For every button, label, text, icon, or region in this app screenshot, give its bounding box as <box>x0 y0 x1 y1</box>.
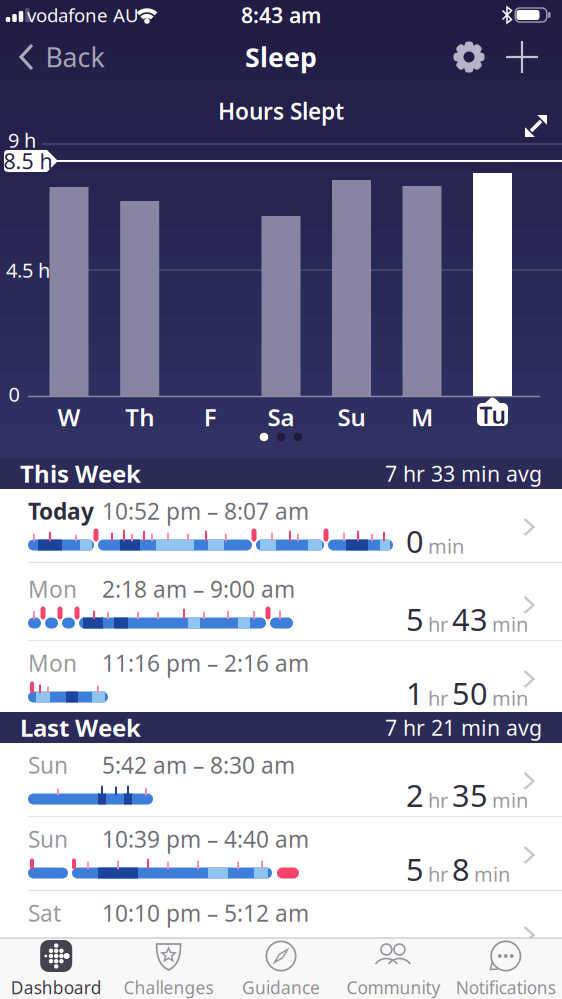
staticText: 8.5 h <box>3 147 52 175</box>
staticText: 8:43 am <box>241 1 321 29</box>
staticText: Challenges <box>124 976 214 999</box>
button[interactable]: Community <box>337 940 449 998</box>
staticText: Sleep <box>245 39 317 75</box>
staticText: 5:42 am – 8:30 am <box>102 750 295 780</box>
staticText: 4.5 h <box>6 257 50 283</box>
staticText: This Week <box>20 458 141 489</box>
staticText: min <box>428 533 464 559</box>
staticText: 10:39 pm – 4:40 am <box>102 824 309 854</box>
button[interactable]: Expand chart <box>519 109 553 143</box>
staticText: Mon <box>28 648 77 678</box>
staticText: Notifications <box>456 976 556 999</box>
staticText: Last Week <box>20 712 141 743</box>
button[interactable]: Back <box>11 35 107 79</box>
staticText: 50 <box>452 673 488 713</box>
staticText: 10:10 pm – 5:12 am <box>102 898 309 928</box>
staticText: Su <box>337 401 365 433</box>
staticText: Today <box>28 496 94 526</box>
staticText: M <box>411 401 433 433</box>
staticText: 7 hr 33 min avg <box>385 459 542 488</box>
button[interactable]: Notifications <box>450 940 562 998</box>
staticText: min <box>492 611 528 637</box>
button[interactable]: Challenges <box>113 940 225 998</box>
staticText: min <box>474 861 510 887</box>
staticText: hr <box>428 685 448 711</box>
staticText: 10:52 pm – 8:07 am <box>102 496 309 526</box>
staticText: 0 <box>8 381 19 407</box>
button[interactable]: Mon <box>0 567 562 641</box>
staticText: 2 <box>406 775 424 815</box>
staticText: hr <box>428 787 448 813</box>
button[interactable]: Add sleep log <box>500 35 544 79</box>
staticText: Mon <box>28 574 77 604</box>
staticText: 7 hr 21 min avg <box>385 713 542 742</box>
staticText: Sa <box>267 401 294 433</box>
staticText: 43 <box>452 599 488 639</box>
button[interactable]: Sat <box>0 891 562 965</box>
staticText: 1 <box>406 673 424 713</box>
staticText: min <box>492 685 528 711</box>
button[interactable]: Sun <box>0 743 562 817</box>
staticText: 5 <box>406 849 424 889</box>
staticText: 5 <box>406 599 424 639</box>
button[interactable]: Sun <box>0 817 562 891</box>
staticText: Dashboard <box>11 976 102 999</box>
staticText: Sun <box>28 824 68 854</box>
staticText: 8 <box>452 849 470 889</box>
staticText: 0 <box>406 521 424 561</box>
staticText: Hours Slept <box>218 96 344 126</box>
staticText: 11:16 pm – 2:16 am <box>102 648 309 678</box>
staticText: 9 h <box>8 127 36 153</box>
staticText: Back <box>45 39 104 75</box>
staticText: hr <box>428 861 448 887</box>
staticText: W <box>57 401 80 433</box>
staticText: Guidance <box>242 976 320 999</box>
staticText: min <box>492 787 528 813</box>
staticText: Tu <box>479 400 505 430</box>
staticText: 2:18 am – 9:00 am <box>102 574 295 604</box>
staticText: hr <box>428 611 448 637</box>
staticText: Sat <box>28 898 61 928</box>
staticText: F <box>204 401 217 433</box>
button[interactable]: Dashboard <box>0 940 112 998</box>
button[interactable]: Settings <box>447 35 491 79</box>
button[interactable]: Mon <box>0 641 562 715</box>
staticText: Community <box>346 976 440 999</box>
staticText: Sun <box>28 750 68 780</box>
button[interactable]: Guidance <box>225 940 337 998</box>
staticText: Th <box>125 401 154 433</box>
button[interactable]: Today <box>0 489 562 563</box>
staticText: vodafone AU <box>27 3 139 27</box>
staticText: 35 <box>452 775 488 815</box>
